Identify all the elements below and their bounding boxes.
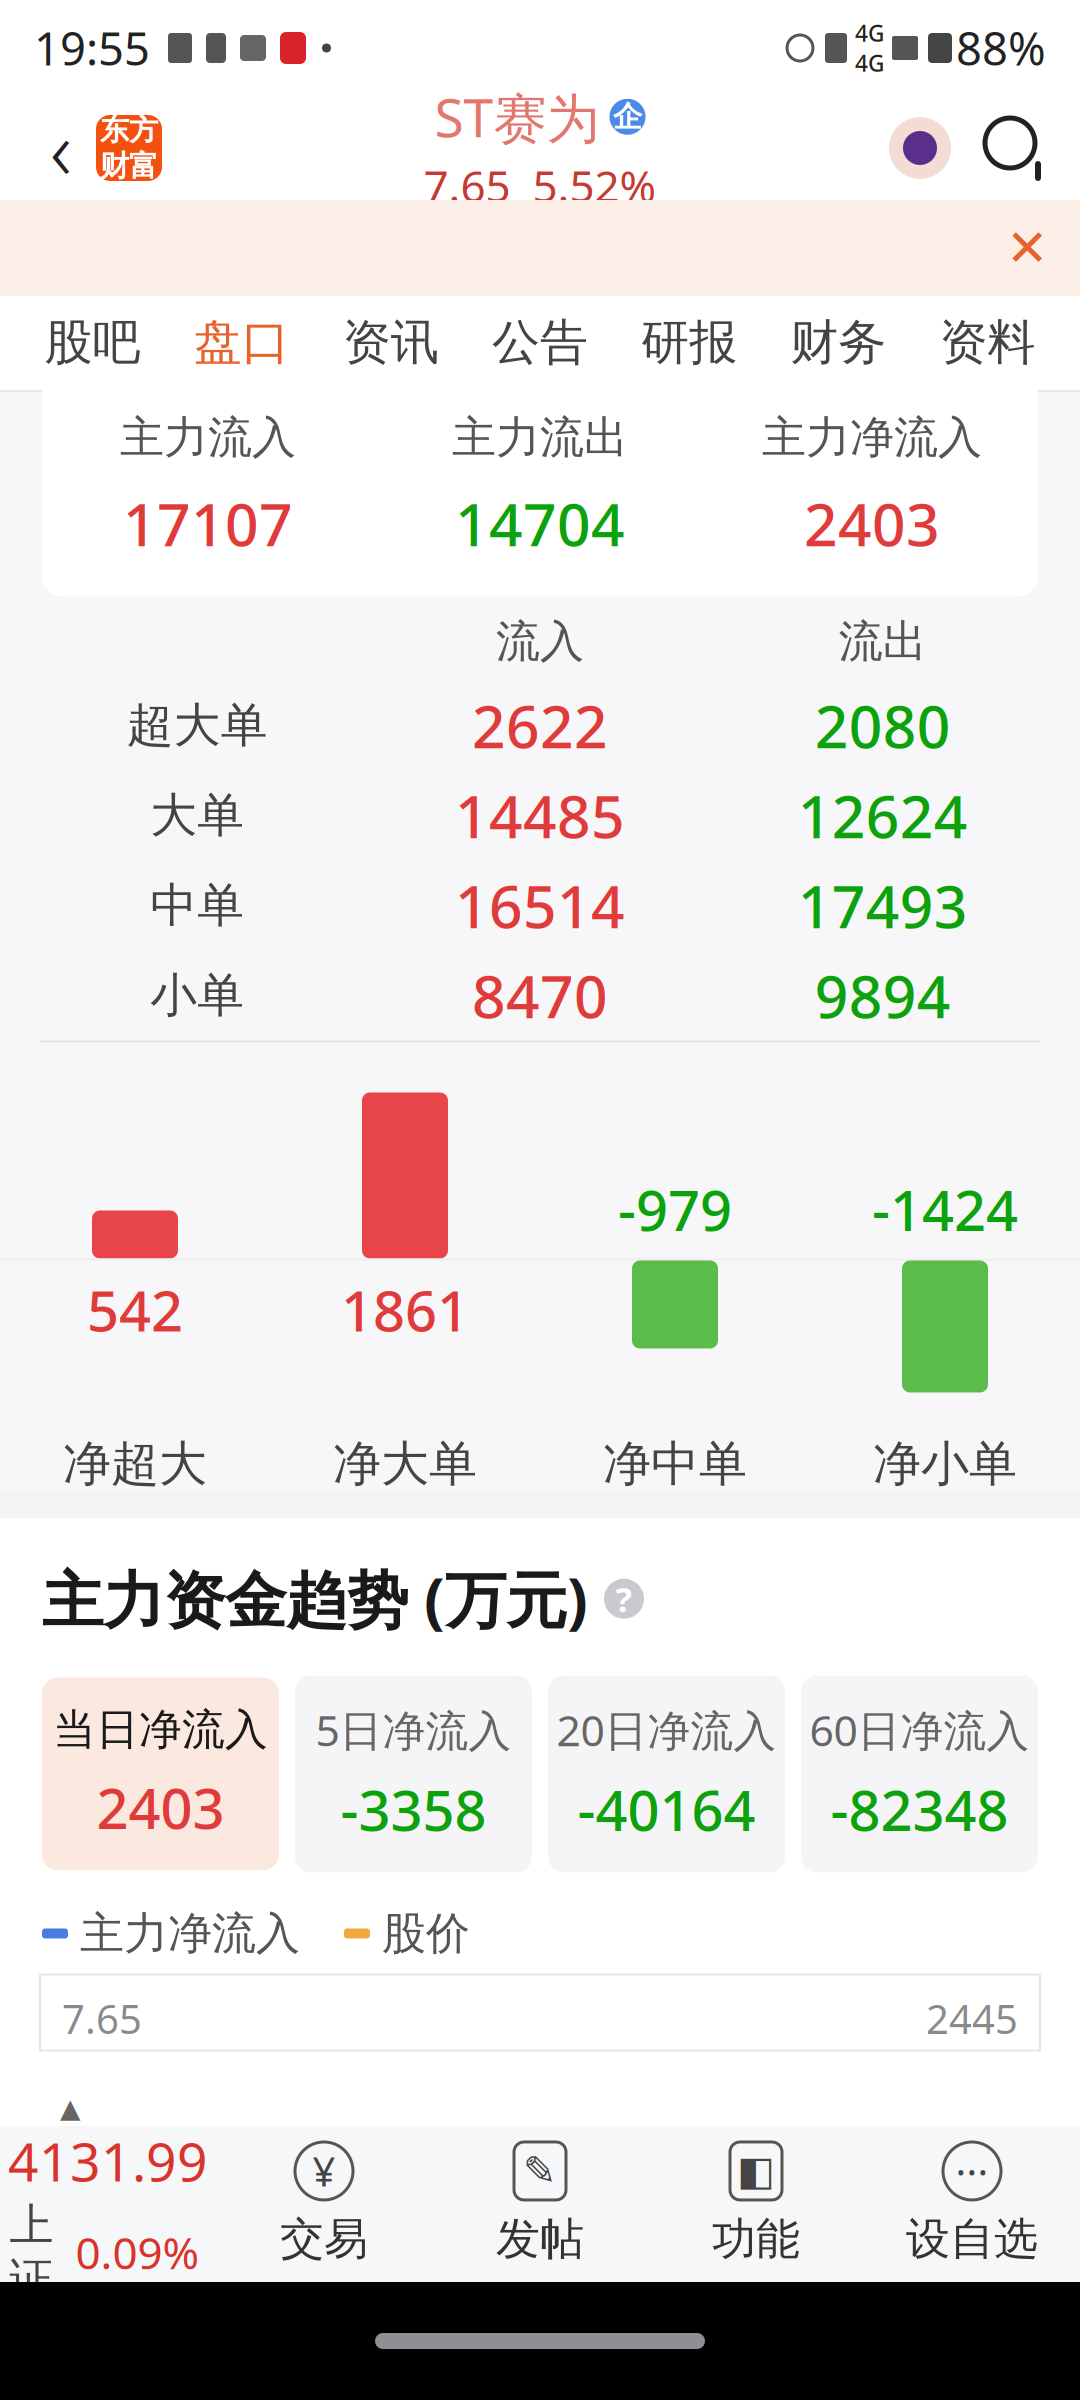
staticText: 2080 <box>815 686 951 764</box>
button[interactable]: 关闭广告 <box>992 213 1062 283</box>
button[interactable]: 研报 <box>615 296 764 390</box>
button[interactable]: ✎ <box>432 2142 648 2266</box>
staticText: 5.52% <box>532 156 656 215</box>
staticText: 公告 <box>492 313 588 372</box>
staticText: -1424 <box>872 1172 1018 1246</box>
staticText: 88% <box>956 18 1046 78</box>
staticText: 股吧 <box>45 313 141 372</box>
staticText: 功能 <box>712 2212 800 2266</box>
staticText: 净中单 <box>603 1434 747 1493</box>
staticText: ✕ <box>1006 219 1048 277</box>
button[interactable]: 当日净流入 <box>42 1678 279 1870</box>
staticText: ◧ <box>737 2148 775 2194</box>
staticText: -3358 <box>340 1772 486 1846</box>
staticText: 主力流出 <box>452 410 628 464</box>
staticText: 2622 <box>472 686 608 764</box>
button[interactable]: 说明 <box>604 1579 644 1619</box>
staticText: 主力资金趋势 (万元) <box>42 1558 588 1639</box>
staticText: 17107 <box>123 485 293 562</box>
button[interactable]: 搜索 <box>976 109 1054 187</box>
staticText: 财富 <box>100 148 158 184</box>
staticText: 0.09% <box>75 2223 199 2281</box>
staticText: ▲ <box>60 2093 81 2123</box>
staticText: 研报 <box>641 313 737 372</box>
staticText: -82348 <box>830 1772 1008 1846</box>
staticText: 20日净流入 <box>556 1701 776 1758</box>
staticText: ¥ <box>312 2144 335 2197</box>
staticText: 东方 <box>100 112 158 148</box>
staticText: 60日净流入 <box>809 1701 1029 1758</box>
staticText: -40164 <box>577 1772 755 1846</box>
staticText: 8470 <box>472 956 608 1034</box>
staticText: 12624 <box>798 776 968 854</box>
staticText: 5日净流入 <box>315 1701 511 1758</box>
button[interactable]: 资料 <box>913 296 1062 390</box>
staticText: 主力净流入 <box>80 1906 300 1960</box>
staticText: 2445 <box>926 1992 1018 2045</box>
staticText: 7.65 <box>423 156 510 215</box>
staticText: 14485 <box>455 776 625 854</box>
staticText: ✎ <box>523 2148 557 2194</box>
staticText: 设自选 <box>906 2212 1038 2266</box>
staticText: ST赛为 <box>434 81 599 152</box>
staticText: 2403 <box>96 1770 224 1844</box>
button[interactable]: 资讯 <box>316 296 465 390</box>
button[interactable]: 5日净流入 <box>295 1675 532 1872</box>
staticText: 16514 <box>455 866 625 944</box>
staticText: 9894 <box>815 956 951 1034</box>
staticText: 流出 <box>839 614 927 668</box>
button[interactable]: 20日净流入 <box>548 1675 785 1872</box>
button[interactable]: 财务 <box>764 296 913 390</box>
staticText: 财务 <box>790 313 886 372</box>
staticText: 19:55 <box>34 18 150 78</box>
staticText: 净大单 <box>333 1434 477 1493</box>
staticText: 资讯 <box>343 313 439 372</box>
staticText: 盘口 <box>194 313 290 372</box>
staticText: 流入 <box>496 614 584 668</box>
staticText: ? <box>615 1576 632 1622</box>
staticText: -979 <box>618 1172 732 1246</box>
staticText: 17493 <box>798 866 968 944</box>
staticText: 2403 <box>804 485 940 562</box>
staticText: 当日净流入 <box>53 1704 268 1756</box>
button[interactable]: 公告 <box>465 296 614 390</box>
staticText: 发帖 <box>496 2212 584 2266</box>
staticText: 4G <box>855 18 884 48</box>
staticText: 1861 <box>341 1272 469 1347</box>
staticText: 资料 <box>939 313 1035 372</box>
staticText: 中单 <box>150 877 244 934</box>
staticText: 交易 <box>280 2212 368 2266</box>
staticText: 542 <box>87 1272 183 1347</box>
button[interactable]: ··· <box>864 2142 1080 2266</box>
staticText: 净超大 <box>63 1434 207 1493</box>
staticText: 净小单 <box>873 1434 1017 1493</box>
staticText: 超大单 <box>127 697 268 754</box>
staticText: 股价 <box>382 1906 470 1960</box>
staticText: 上证 <box>9 2198 53 2306</box>
button[interactable]: 60日净流入 <box>801 1675 1038 1872</box>
button[interactable]: 返回 <box>26 103 96 193</box>
button[interactable]: 股吧 <box>18 296 167 390</box>
staticText: 4131.99 <box>8 2125 208 2196</box>
staticText: 主力净流入 <box>762 410 982 464</box>
button[interactable]: 智能助手 <box>880 108 960 188</box>
staticText: 大单 <box>150 787 244 844</box>
button[interactable]: ◧ <box>648 2142 864 2266</box>
staticText: 主力流入 <box>120 410 296 464</box>
staticText: 企 <box>613 99 642 135</box>
staticText: 14704 <box>455 485 625 562</box>
staticText: 7.65 <box>62 1992 142 2045</box>
button[interactable]: 东方财富首页 <box>96 115 162 181</box>
button[interactable]: ¥ <box>216 2142 432 2266</box>
button[interactable]: 盘口 <box>167 296 316 390</box>
staticText: ··· <box>955 2144 988 2197</box>
staticText: 4G <box>855 48 884 78</box>
staticText: ‹ <box>50 93 72 203</box>
button[interactable]: ▲ <box>0 2093 216 2315</box>
staticText: 小单 <box>150 967 244 1024</box>
